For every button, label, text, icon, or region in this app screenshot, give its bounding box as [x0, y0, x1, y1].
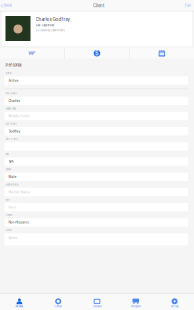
- staticText: Charles: [8, 99, 20, 103]
- staticText: Contact: [54, 305, 62, 308]
- staticText: Middle Initial: [5, 107, 15, 110]
- staticText: Godfrey: [8, 129, 20, 133]
- staticText: Active: [8, 79, 18, 82]
- staticText: Charles Godfrey: [35, 17, 69, 22]
- button[interactable]: Insurance: [78, 293, 116, 310]
- staticText: BACK: [4, 4, 12, 7]
- staticText: Next Appointment: [35, 24, 54, 27]
- staticText: Status: [5, 72, 11, 74]
- button[interactable]: Active: [4, 76, 188, 85]
- button[interactable]: Messages: [0, 48, 64, 58]
- staticText: Male: [8, 175, 16, 179]
- button[interactable]: Emergency: [116, 293, 155, 310]
- button[interactable]: Schedule: [130, 48, 194, 58]
- staticText: $: [95, 50, 99, 57]
- staticText: Race: [5, 199, 9, 201]
- staticText: Settings: [171, 305, 179, 308]
- staticText: Date of Birth: [5, 138, 17, 140]
- button[interactable]: Middle Initial: [4, 112, 188, 120]
- staticText: No Upcoming Appointments: [35, 29, 64, 32]
- staticText: Marital Status: [8, 190, 30, 194]
- button[interactable]: Godfrey: [4, 127, 188, 135]
- staticText: Title: [5, 153, 8, 155]
- staticText: Insurance: [92, 305, 101, 308]
- staticText: Ethnicity: [5, 214, 12, 216]
- staticText: Client: [93, 3, 104, 8]
- staticText: Notes: [8, 236, 17, 240]
- button[interactable]: Non-Hispanic: [4, 218, 188, 227]
- staticText: Last Name: [5, 123, 16, 125]
- staticText: Marital Status: [5, 183, 18, 186]
- button[interactable]: Personal: [0, 293, 39, 310]
- staticText: Middle Initial: [8, 114, 29, 118]
- button[interactable]: Contact: [39, 293, 78, 310]
- button[interactable]: BACK: [0, 1, 12, 10]
- staticText: First Name: [5, 92, 16, 95]
- button[interactable]: Edit: [185, 1, 194, 10]
- button[interactable]: Billing: [65, 48, 129, 58]
- button[interactable]: Charles: [4, 97, 188, 105]
- staticText: Emergency: [131, 305, 141, 308]
- staticText: N/A: [8, 160, 13, 164]
- staticText: Personal: [5, 62, 21, 67]
- button[interactable]: N/A: [4, 157, 188, 166]
- staticText: Notes: [5, 229, 11, 231]
- staticText: Race: [8, 205, 16, 209]
- staticText: Edit: [185, 4, 191, 7]
- staticText: Personal: [15, 305, 23, 308]
- staticText: Gender: [5, 168, 11, 171]
- button[interactable]: Settings: [155, 293, 194, 310]
- staticText: Non-Hispanic: [8, 220, 29, 224]
- button[interactable]: Male: [4, 173, 188, 181]
- button[interactable]: Marital Status: [4, 188, 188, 196]
